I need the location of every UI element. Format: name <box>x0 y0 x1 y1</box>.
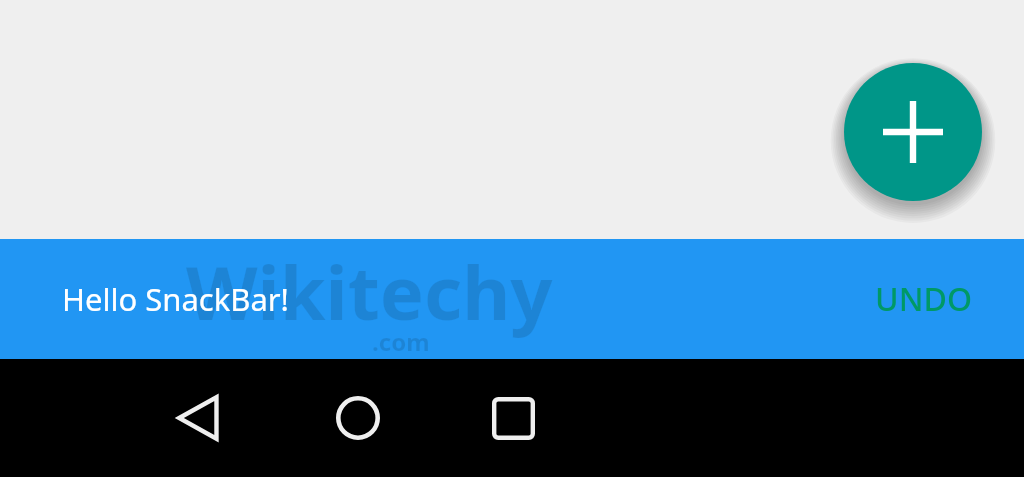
button[interactable]: Recent apps <box>469 374 557 462</box>
staticText: .com <box>372 325 430 358</box>
button[interactable]: Home <box>314 374 402 462</box>
button[interactable]: Add <box>844 63 982 201</box>
staticText: UNDO <box>875 277 972 321</box>
button[interactable]: UNDO <box>863 267 984 331</box>
staticText: Hello SnackBar! <box>62 278 289 320</box>
staticText: Wikitechy <box>186 241 553 342</box>
button[interactable]: Back <box>155 374 243 462</box>
